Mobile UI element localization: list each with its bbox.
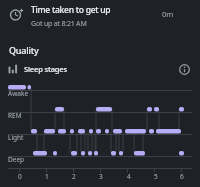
staticText: 3 <box>99 172 103 181</box>
button[interactable]: Sleep stages <box>0 59 200 79</box>
staticText: Quality <box>9 44 39 56</box>
staticText: Deep <box>8 155 25 164</box>
staticText: 0 <box>18 172 22 181</box>
staticText: 6 <box>180 172 184 181</box>
staticText: REM <box>8 111 22 120</box>
staticText: 5 <box>154 172 158 181</box>
staticText: Got up at 8:21 AM <box>31 19 87 29</box>
staticText: Time taken to get up <box>31 4 111 16</box>
button[interactable] <box>177 62 191 76</box>
staticText: 0m <box>162 9 174 19</box>
staticText: Awake <box>8 89 29 98</box>
staticText: 4 <box>127 172 131 181</box>
staticText: Sleep stages <box>24 64 67 74</box>
staticText: Light <box>8 133 24 142</box>
staticText: 2 <box>72 172 76 181</box>
button[interactable]: Time taken to get up <box>0 0 200 34</box>
staticText: 1 <box>45 172 49 181</box>
